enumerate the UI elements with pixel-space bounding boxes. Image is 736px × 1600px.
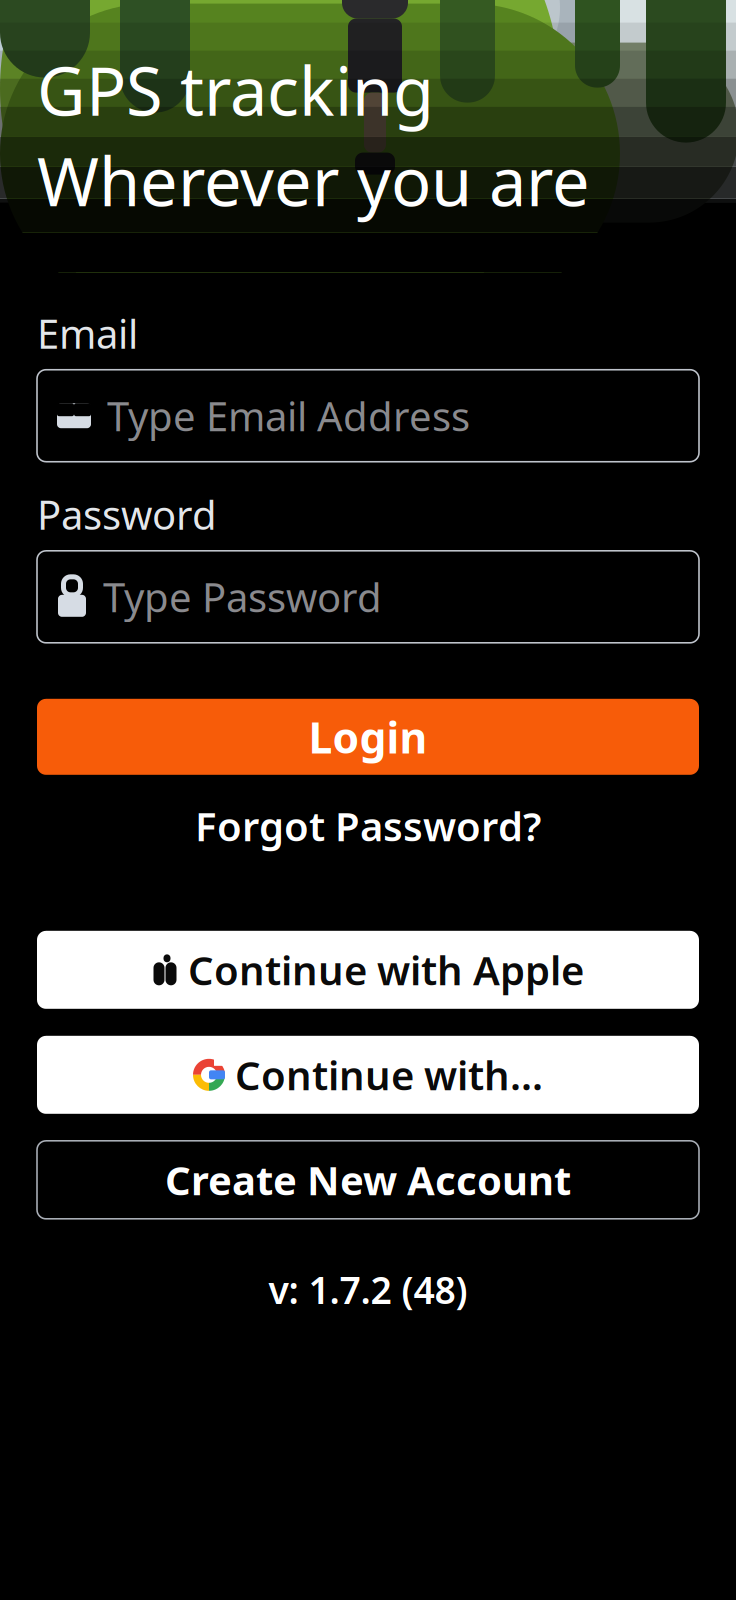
button[interactable]: Continue with Apple (37, 931, 699, 1009)
staticText: Continue with Apple (188, 943, 584, 996)
button[interactable]: Continue with... (37, 1036, 699, 1114)
staticText: GPS tracking (37, 45, 434, 134)
staticText: Password (37, 488, 217, 541)
staticText: Type Email Address (107, 389, 470, 442)
staticText: Continue with... (235, 1048, 543, 1101)
staticText: Email (37, 307, 138, 360)
staticText: Type Password (103, 570, 382, 623)
button[interactable]: Login (37, 699, 699, 775)
staticText: Wherever you are (37, 136, 590, 225)
staticText: v: 1.7.2 (48) (268, 1265, 467, 1314)
staticText: Forgot Password? (195, 799, 541, 852)
staticText: Create New Account (165, 1153, 571, 1206)
button[interactable]: Forgot Password? (37, 799, 699, 853)
staticText: Login (308, 708, 427, 765)
button[interactable]: Create New Account (37, 1141, 699, 1219)
